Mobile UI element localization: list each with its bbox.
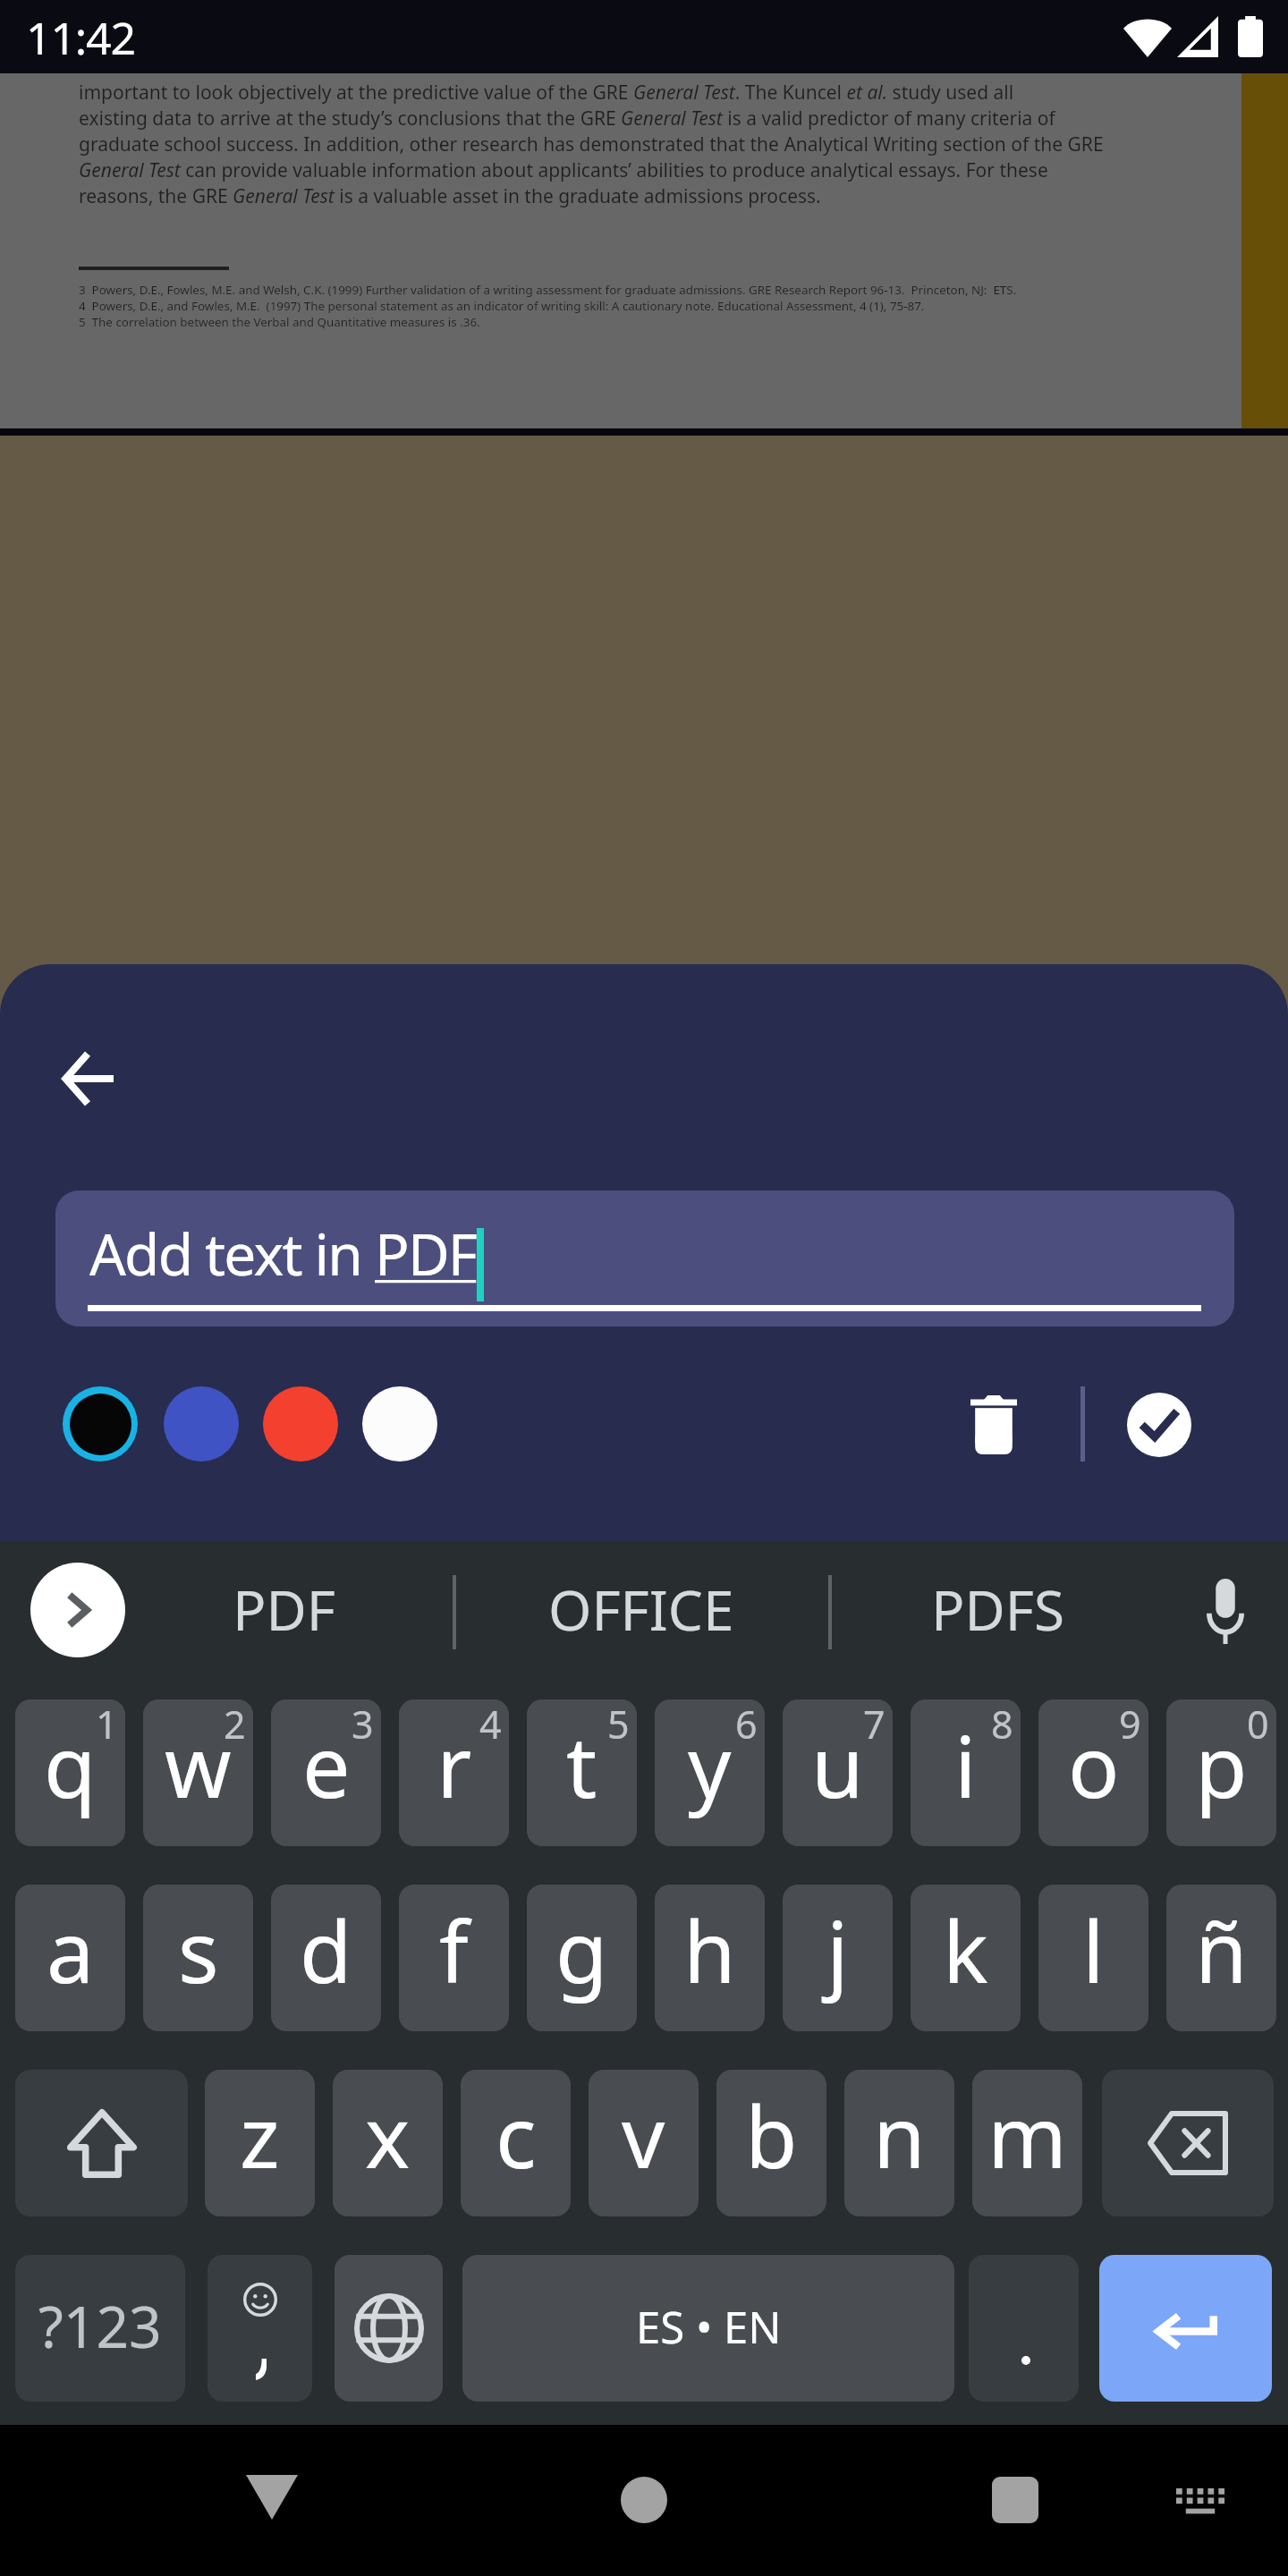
staticText: OFFICE [548,1572,734,1647]
staticText: 8 [991,1699,1013,1750]
staticText: 5 The correlation between the Verbal and… [79,314,480,330]
staticText: 3 [352,1699,374,1750]
staticText: 4 Powers, D.E., and Fowles, M.E. (1997) … [79,298,925,314]
staticText: s [178,1892,219,2007]
button[interactable]: Confirm [1112,1377,1207,1472]
button[interactable]: Colour [263,1386,338,1462]
staticText: b [745,2077,798,2192]
button[interactable]: ?123 [15,2255,185,2402]
button[interactable]: b [716,2070,826,2216]
staticText: Add text in [89,1215,375,1292]
staticText: e [302,1707,351,1822]
button[interactable]: x [333,2070,443,2216]
staticText: w [165,1707,232,1822]
button[interactable]: k [911,1885,1021,2031]
staticText: 9 [1119,1699,1141,1750]
staticText: i [954,1707,977,1822]
button[interactable]: Shift [15,2070,188,2216]
staticText: PDF [375,1215,477,1292]
staticText: 3 Powers, D.E., Fowles, M.E. and Welsh, … [79,282,1017,298]
staticText: 1 [96,1699,118,1750]
button[interactable]: j [783,1885,893,2031]
staticText: q [44,1707,97,1822]
staticText: g [555,1892,608,2007]
button[interactable]: More suggestions [30,1563,125,1657]
staticText: m [987,2077,1067,2192]
button[interactable]: ñ [1166,1885,1276,2031]
button[interactable]: o [1038,1699,1148,1846]
staticText: k [943,1892,988,2007]
staticText: important to look objectively at the pre… [79,80,1014,106]
button[interactable]: l [1038,1885,1148,2031]
button[interactable]: Home [590,2446,698,2554]
button[interactable]: p [1166,1699,1276,1846]
button[interactable]: y [655,1699,765,1846]
staticText: z [240,2077,280,2192]
staticText: 7 [863,1699,885,1750]
button[interactable]: Voice input [1163,1532,1288,1690]
button[interactable]: PDFS [859,1529,1136,1688]
staticText: reasons, the GRE General Test is a valua… [79,183,821,209]
button[interactable]: e [271,1699,381,1846]
button[interactable]: z [205,2070,315,2216]
button[interactable]: Period [969,2255,1079,2402]
staticText: r [436,1707,472,1822]
button[interactable]: Backspace [1102,2070,1274,2216]
staticText: 2 [224,1699,246,1750]
button[interactable]: f [399,1885,509,2031]
button[interactable]: Back [43,1034,132,1123]
button[interactable]: Delete [946,1377,1041,1472]
staticText: n [873,2077,926,2192]
staticText: h [683,1892,736,2007]
button[interactable]: i [911,1699,1021,1846]
staticText: d [300,1892,352,2007]
staticText: PDFS [931,1572,1064,1647]
button[interactable]: Add text in [55,1191,1234,1326]
staticText: General Test can provide valuable inform… [79,157,1048,183]
button[interactable]: PDF [131,1529,436,1688]
button[interactable]: w [143,1699,253,1846]
button[interactable]: n [844,2070,954,2216]
staticText: graduate school success. In addition, ot… [79,131,1104,157]
button[interactable]: OFFICE [462,1529,820,1688]
staticText: 4 [479,1699,502,1750]
staticText: x [365,2077,411,2192]
staticText: ?123 [38,2287,162,2365]
staticText: 11:42 [26,7,135,68]
button[interactable]: v [589,2070,699,2216]
button[interactable]: s [143,1885,253,2031]
button[interactable]: Colour [164,1386,239,1462]
staticText: v [622,2077,665,2192]
button[interactable]: q [15,1699,125,1846]
button[interactable]: d [271,1885,381,2031]
button[interactable]: c [461,2070,571,2216]
staticText: PDF [233,1572,335,1647]
staticText: p [1195,1707,1248,1822]
button[interactable]: r [399,1699,509,1846]
button[interactable]: h [655,1885,765,2031]
staticText: 0 [1247,1699,1269,1750]
button[interactable]: g [527,1885,637,2031]
button[interactable]: Colour selected [63,1386,138,1462]
staticText: o [1068,1707,1120,1822]
button[interactable]: Back [218,2444,326,2551]
button[interactable]: m [972,2070,1082,2216]
button[interactable]: a [15,1885,125,2031]
button[interactable]: Colour [362,1386,437,1462]
staticText: l [1082,1892,1105,2007]
button[interactable]: Recents [962,2446,1069,2554]
staticText: existing data to arrive at the study’s c… [79,106,1055,131]
button[interactable]: Comma and emoji [208,2255,312,2402]
button[interactable]: Enter [1099,2255,1272,2402]
staticText: j [826,1892,849,2007]
button[interactable]: ES • EN [462,2255,954,2402]
staticText: 6 [735,1699,758,1750]
button[interactable]: t [527,1699,637,1846]
button[interactable]: Change language [335,2255,443,2402]
staticText: f [439,1892,469,2007]
button[interactable]: Keyboard [1147,2447,1254,2555]
staticText: y [688,1707,732,1822]
staticText: a [47,1892,95,2007]
button[interactable]: u [783,1699,893,1846]
staticText: ñ [1195,1892,1248,2007]
